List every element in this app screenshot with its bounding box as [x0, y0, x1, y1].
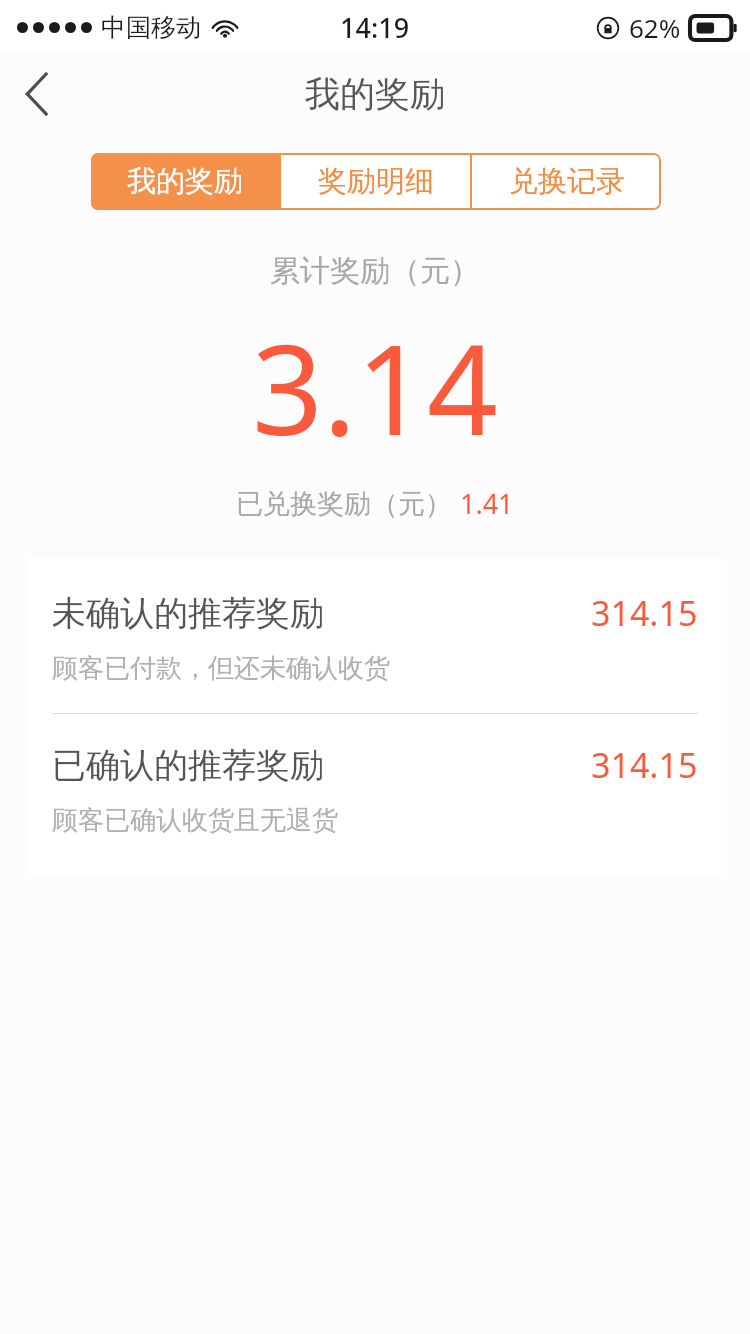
button[interactable]: 我的奖励: [91, 153, 279, 210]
staticText: 顾客已付款，但还未确认收货: [52, 652, 390, 685]
staticText: 兑换记录: [509, 163, 625, 200]
staticText: 我的奖励: [305, 72, 445, 116]
staticText: 314.15: [591, 742, 698, 788]
staticText: 累计奖励（元）: [270, 252, 480, 290]
staticText: 顾客已确认收货且无退货: [52, 804, 338, 837]
staticText: 14:19: [340, 9, 410, 46]
button[interactable]: 未确认的推荐奖励: [29, 590, 721, 685]
button[interactable]: 已确认的推荐奖励: [29, 742, 721, 837]
staticText: 已兑换奖励（元）: [236, 487, 452, 521]
staticText: 已确认的推荐奖励: [52, 744, 591, 787]
staticText: 3.14: [252, 302, 499, 471]
staticText: 未确认的推荐奖励: [52, 592, 591, 635]
staticText: 中国移动: [101, 12, 201, 43]
staticText: 奖励明细: [318, 163, 434, 200]
button[interactable]: Back: [0, 57, 74, 131]
staticText: 1.41: [460, 485, 514, 522]
button[interactable]: 奖励明细: [281, 153, 470, 210]
staticText: 我的奖励: [127, 163, 243, 200]
staticText: 62%: [629, 10, 681, 45]
staticText: 314.15: [591, 590, 698, 636]
button[interactable]: 兑换记录: [472, 153, 661, 210]
